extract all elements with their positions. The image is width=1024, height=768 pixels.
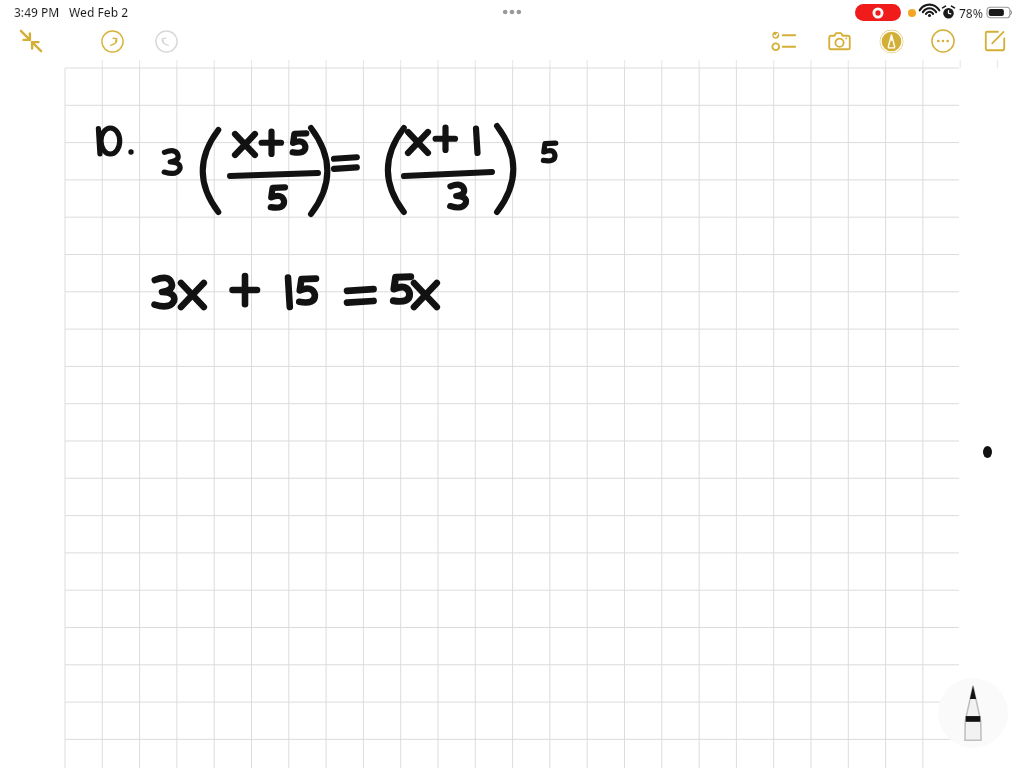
staticText: Wed Feb 2 [69,4,129,20]
staticText: 3:49 PM [14,4,60,20]
button[interactable]: Markup [868,24,914,58]
button[interactable]: Undo [90,24,134,58]
button[interactable]: Insert photo [816,24,862,58]
button[interactable]: Drawing tools [938,678,1008,748]
button[interactable]: Collapse [8,24,54,58]
button[interactable]: New note [972,24,1018,58]
button[interactable]: More options [920,24,966,58]
button[interactable]: Checklist [760,24,810,58]
button[interactable]: Redo [144,24,188,58]
staticText: 78% [959,5,983,21]
